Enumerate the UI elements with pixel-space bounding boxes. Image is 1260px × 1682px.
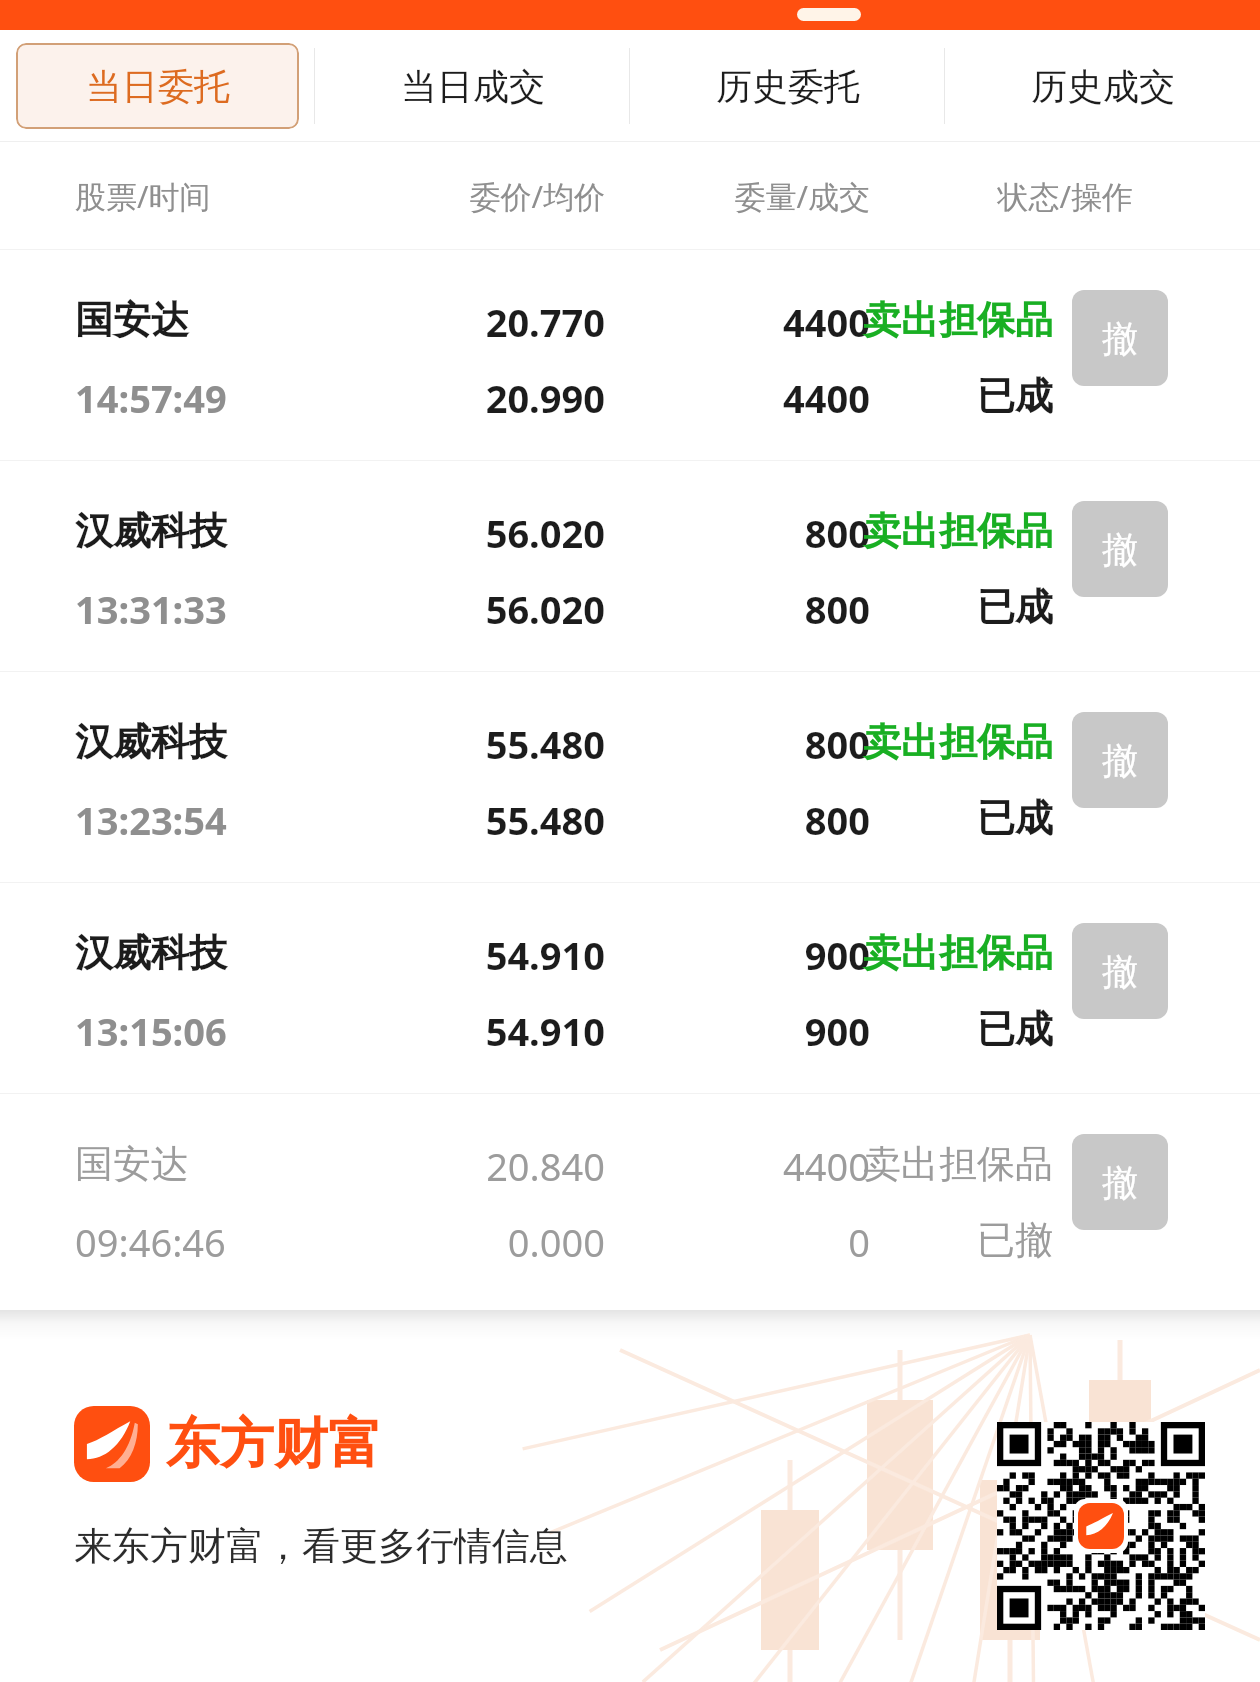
staticText: 4400: [610, 372, 870, 424]
button[interactable]: 国安达: [0, 1094, 1260, 1304]
staticText: 800: [610, 583, 870, 635]
button[interactable]: 当日成交: [315, 30, 630, 142]
staticText: 56.020: [195, 583, 605, 635]
staticText: 800: [610, 507, 870, 559]
staticText: 20.770: [195, 296, 605, 348]
button[interactable]: 撤单: [1072, 501, 1168, 597]
staticText: 委价/均价: [195, 175, 605, 217]
staticText: 55.480: [195, 794, 605, 846]
button[interactable]: 撤单: [1072, 290, 1168, 386]
staticText: 历史委托: [716, 64, 860, 109]
staticText: 撤: [1102, 316, 1138, 361]
staticText: 4400: [610, 296, 870, 348]
staticText: 卖出担保品: [780, 1140, 1053, 1188]
staticText: 已成: [780, 794, 1053, 842]
staticText: 0: [610, 1216, 870, 1268]
staticText: 13:15:06: [75, 1005, 227, 1057]
staticText: 800: [610, 794, 870, 846]
staticText: 撤: [1102, 527, 1138, 572]
staticText: 国安达: [75, 296, 189, 344]
button[interactable]: 当日委托: [16, 43, 299, 129]
staticText: 来东方财富，看更多行情信息: [74, 1522, 568, 1570]
staticText: 国安达: [75, 1140, 189, 1188]
button[interactable]: 撤单: [1072, 923, 1168, 1019]
button[interactable]: 历史委托: [630, 30, 945, 142]
staticText: 汉威科技: [75, 507, 227, 555]
staticText: 13:31:33: [75, 583, 227, 635]
staticText: 东方财富: [166, 1410, 382, 1478]
staticText: 已成: [780, 583, 1053, 631]
staticText: 54.910: [195, 929, 605, 981]
staticText: 汉威科技: [75, 929, 227, 977]
staticText: 汉威科技: [75, 718, 227, 766]
button[interactable]: 撤单: [1072, 1134, 1168, 1230]
staticText: 卖出担保品: [780, 929, 1053, 977]
button[interactable]: 历史成交: [945, 30, 1260, 142]
staticText: 历史成交: [1031, 64, 1175, 109]
staticText: 900: [610, 1005, 870, 1057]
staticText: 55.480: [195, 718, 605, 770]
staticText: 撤: [1102, 949, 1138, 994]
staticText: 委量/成交: [610, 175, 870, 217]
staticText: 当日委托: [86, 64, 230, 109]
button[interactable]: 撤单: [1072, 712, 1168, 808]
button[interactable]: 汉威科技: [0, 461, 1260, 671]
staticText: 股票/时间: [75, 175, 211, 217]
staticText: 800: [610, 718, 870, 770]
staticText: 卖出担保品: [780, 507, 1053, 555]
staticText: 14:57:49: [75, 372, 227, 424]
staticText: 13:23:54: [75, 794, 227, 846]
staticText: 卖出担保品: [780, 718, 1053, 766]
staticText: 900: [610, 929, 870, 981]
staticText: 状态/操作: [880, 175, 1133, 217]
staticText: 4400: [610, 1140, 870, 1192]
staticText: 撤: [1102, 1160, 1138, 1205]
staticText: 20.840: [195, 1140, 605, 1192]
staticText: 已成: [780, 372, 1053, 420]
staticText: 0.000: [195, 1216, 605, 1268]
staticText: 09:46:46: [75, 1216, 226, 1268]
staticText: 卖出担保品: [780, 296, 1053, 344]
button[interactable]: 汉威科技: [0, 883, 1260, 1093]
staticText: 已成: [780, 1005, 1053, 1053]
staticText: 当日成交: [401, 64, 545, 109]
staticText: 撤: [1102, 738, 1138, 783]
staticText: 已撤: [780, 1216, 1053, 1264]
staticText: 54.910: [195, 1005, 605, 1057]
button[interactable]: 汉威科技: [0, 672, 1260, 882]
staticText: 56.020: [195, 507, 605, 559]
button[interactable]: 国安达: [0, 250, 1260, 460]
staticText: 20.990: [195, 372, 605, 424]
